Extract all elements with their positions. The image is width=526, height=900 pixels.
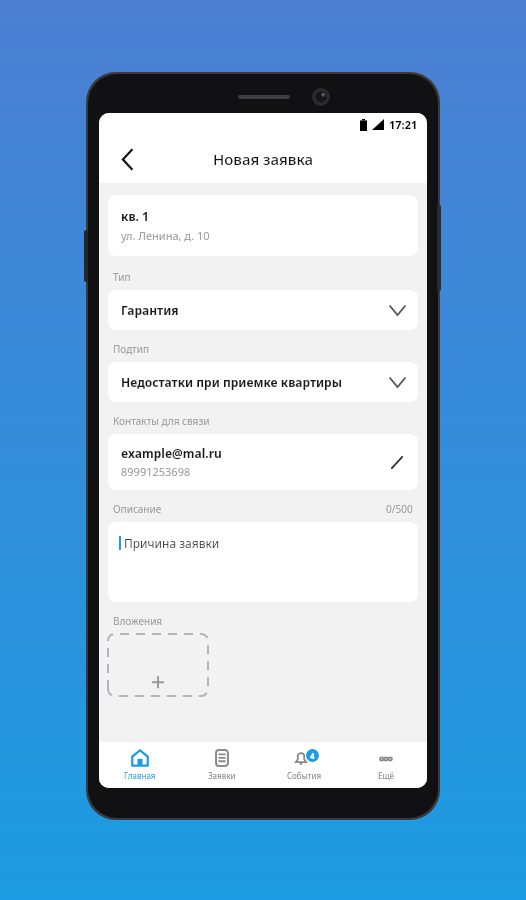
staticText: Описание — [113, 502, 162, 516]
staticText: ул. Ленина, д. 10 — [121, 228, 210, 243]
staticText: Контакты для связи — [113, 414, 210, 428]
button[interactable]: Назад — [109, 141, 145, 177]
button[interactable]: Главная — [99, 742, 181, 788]
staticText: кв. 1 — [121, 208, 149, 224]
staticText: Гарантия — [121, 302, 390, 318]
staticText: Ещё — [378, 770, 395, 781]
button[interactable]: кв. 1 — [108, 195, 418, 256]
staticText: 4 — [310, 750, 315, 761]
button[interactable]: 4 — [263, 742, 345, 788]
button[interactable]: Добавить вложение — [108, 634, 208, 696]
staticText: Новая заявка — [213, 149, 313, 169]
button[interactable]: example@mal.ru — [108, 434, 418, 490]
button[interactable]: Ещё — [345, 742, 427, 788]
button[interactable]: Заявки — [181, 742, 263, 788]
staticText: Вложения — [113, 614, 163, 628]
staticText: Тип — [113, 270, 131, 284]
staticText: Главная — [124, 770, 156, 781]
staticText: Недостатки при приемке квартиры — [121, 374, 390, 390]
button[interactable]: Недостатки при приемке квартиры — [108, 362, 418, 402]
button[interactable]: Гарантия — [108, 290, 418, 330]
staticText: 17:21 — [389, 117, 418, 132]
staticText: Причина заявки — [124, 535, 220, 551]
staticText: 0/500 — [386, 502, 413, 516]
staticText: Заявки — [208, 770, 236, 781]
button[interactable]: Причина заявки — [108, 522, 418, 602]
staticText: 89991253698 — [121, 464, 191, 479]
staticText: Подтип — [113, 342, 150, 356]
staticText: example@mal.ru — [121, 445, 222, 461]
staticText: События — [287, 770, 322, 781]
